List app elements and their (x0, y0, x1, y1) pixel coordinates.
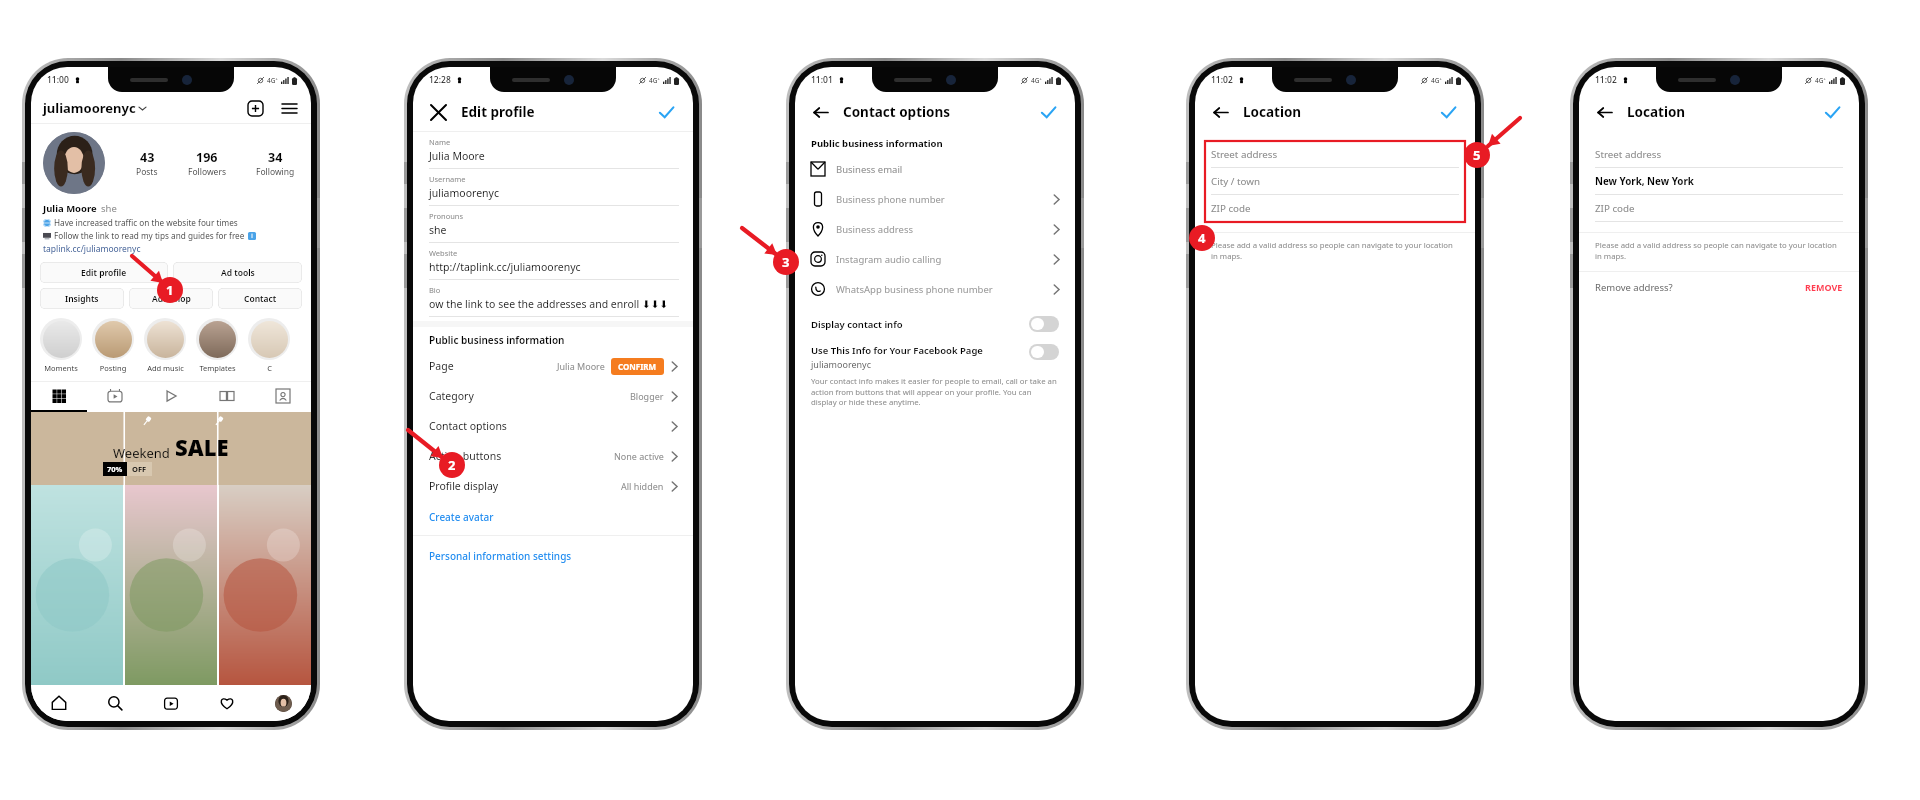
staticText: City / town (1211, 175, 1261, 188)
staticText: juliamoorenyc (43, 99, 136, 117)
staticText: Julia Moore (429, 149, 485, 163)
button[interactable]: Remove address? (1595, 272, 1843, 302)
staticText: CONFIRM (618, 361, 657, 372)
button[interactable]: Done (1435, 99, 1461, 125)
staticText: Profile display (429, 479, 499, 493)
staticText: Street address (1211, 148, 1278, 161)
button[interactable]: Profile display (429, 471, 679, 501)
staticText: SALE (175, 432, 229, 462)
button[interactable]: Ad tools (173, 262, 302, 283)
staticText: Location (1243, 103, 1302, 121)
button[interactable]: Insights (40, 288, 124, 309)
button[interactable]: Close (425, 99, 451, 125)
staticText: Weekend (113, 444, 170, 462)
staticText: Action buttons (429, 449, 502, 463)
staticText: 4G⁺ (1815, 76, 1826, 85)
staticText: Public business information (811, 137, 943, 150)
button[interactable]: Back (1207, 99, 1233, 125)
button[interactable]: ZIP code (1595, 195, 1843, 222)
button[interactable]: Moments (40, 318, 82, 373)
staticText: Create avatar (429, 510, 494, 524)
button[interactable]: Street address (1211, 141, 1459, 168)
button[interactable]: Menu (279, 98, 299, 118)
button[interactable]: Tab 0 (31, 382, 87, 410)
staticText: Posts (136, 166, 158, 178)
button[interactable]: New York, New York (1595, 168, 1843, 195)
button[interactable]: Bio (429, 280, 679, 317)
staticText: Your contact info makes it easier for pe… (811, 376, 1059, 407)
button[interactable]: Instagram audio calling (811, 244, 1061, 274)
button[interactable]: Add shop (129, 288, 213, 309)
staticText: 1 (166, 281, 174, 299)
staticText: Use This Info for Your Facebook Page (811, 344, 983, 357)
staticText: 4 (1198, 229, 1206, 247)
staticText: Business phone number (836, 193, 945, 206)
button[interactable]: WhatsApp business phone number (811, 274, 1061, 304)
button[interactable]: Business phone number (811, 184, 1061, 214)
button[interactable]: Toggle (1029, 316, 1059, 332)
staticText: 5 (1473, 146, 1481, 164)
button[interactable]: Pronouns (429, 206, 679, 243)
staticText: Location (1627, 103, 1686, 121)
button[interactable]: Name (429, 132, 679, 169)
staticText: New York, New York (1595, 175, 1694, 188)
staticText: REMOVE (1805, 281, 1843, 293)
button[interactable]: Website (429, 243, 679, 280)
button[interactable]: Edit profile (40, 262, 168, 283)
staticText: OFF (132, 464, 147, 474)
button[interactable]: Contact (218, 288, 302, 309)
button[interactable]: Templates (196, 318, 238, 373)
button[interactable]: Home (31, 685, 87, 721)
button[interactable]: Back (807, 99, 833, 125)
staticText: C (267, 363, 272, 373)
staticText: Please add a valid address so people can… (1211, 240, 1459, 261)
staticText: 2 (448, 456, 456, 474)
button[interactable]: Done (653, 99, 679, 125)
button[interactable]: Toggle (1029, 344, 1059, 360)
button[interactable]: Posting time (92, 318, 134, 373)
button[interactable]: Search (87, 685, 143, 721)
staticText: Page (429, 359, 454, 373)
button[interactable]: Contact options (429, 411, 679, 441)
staticText: 12:28 (429, 74, 451, 86)
staticText: Contact options (843, 103, 951, 121)
button[interactable]: Business email (811, 154, 1061, 184)
staticText: Contact options (429, 419, 507, 433)
staticText: Public business information (429, 333, 565, 347)
button[interactable]: Username (429, 169, 679, 206)
button[interactable]: ZIP code (1211, 195, 1459, 222)
button[interactable]: New post (245, 98, 265, 118)
button[interactable]: Add music (144, 318, 186, 373)
button[interactable]: Done (1819, 99, 1845, 125)
staticText: Please add a valid address so people can… (1595, 240, 1843, 261)
button[interactable]: Action buttons (429, 441, 679, 471)
staticText: 11:02 (1211, 74, 1233, 86)
button[interactable]: Back (1591, 99, 1617, 125)
staticText: 34 (268, 149, 283, 166)
button[interactable]: City / town (1211, 168, 1459, 195)
staticText: 3 (782, 253, 790, 271)
button[interactable]: Done (1035, 99, 1061, 125)
button[interactable]: Reels (143, 685, 199, 721)
button[interactable]: Tab 3 (199, 382, 255, 410)
button[interactable]: Profile (255, 685, 311, 721)
button[interactable]: Personal information settings (413, 544, 693, 568)
button[interactable]: Category (429, 381, 679, 411)
button[interactable]: Likes (199, 685, 255, 721)
staticText: Personal information settings (429, 549, 572, 563)
button[interactable]: Tab 4 (255, 382, 311, 410)
staticText: Edit profile (461, 103, 535, 121)
staticText: Contact (244, 293, 277, 305)
button[interactable]: Tab 1 (87, 382, 143, 410)
button[interactable]: Business address (811, 214, 1061, 244)
button[interactable]: Street address (1595, 141, 1843, 168)
button[interactable]: Tab 2 (143, 382, 199, 410)
staticText: taplink.cc/juliamoorenyc (43, 243, 141, 255)
staticText: Street address (1595, 148, 1662, 161)
staticText: Username (429, 174, 466, 184)
button[interactable]: C (248, 318, 290, 373)
button[interactable]: Create avatar (413, 505, 693, 529)
staticText: 11:01 (811, 74, 833, 86)
button[interactable]: CONFIRM (618, 361, 657, 372)
button[interactable]: Page (429, 351, 679, 381)
